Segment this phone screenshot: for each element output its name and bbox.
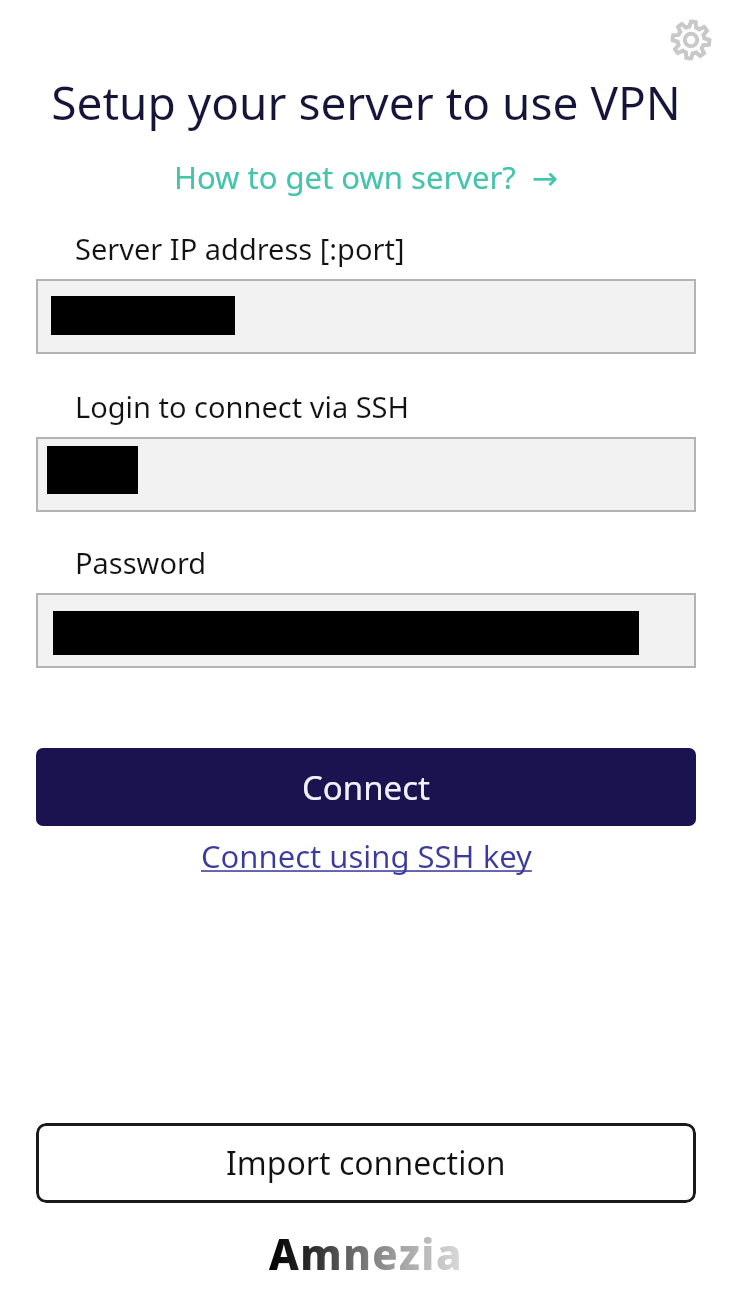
staticText: Connect bbox=[302, 765, 430, 810]
button[interactable]: Settings bbox=[665, 14, 717, 66]
button[interactable]: How to get own server? → bbox=[168, 154, 564, 200]
button[interactable]: Import connection bbox=[36, 1123, 696, 1203]
staticText: Setup your server to use VPN bbox=[51, 71, 681, 134]
staticText: Import connection bbox=[226, 1141, 506, 1185]
staticText: Server IP address [:port] bbox=[75, 229, 405, 268]
staticText: How to get own server? → bbox=[174, 156, 558, 198]
button[interactable] bbox=[36, 437, 696, 512]
button[interactable] bbox=[36, 593, 696, 668]
button[interactable]: Connect using SSH key bbox=[193, 832, 540, 880]
button[interactable]: Connect bbox=[36, 748, 696, 826]
staticText: Amnezia bbox=[269, 1225, 464, 1282]
button[interactable] bbox=[36, 279, 696, 354]
staticText: Connect using SSH key bbox=[201, 835, 532, 877]
staticText: Password bbox=[75, 543, 207, 582]
staticText: Login to connect via SSH bbox=[75, 387, 410, 426]
